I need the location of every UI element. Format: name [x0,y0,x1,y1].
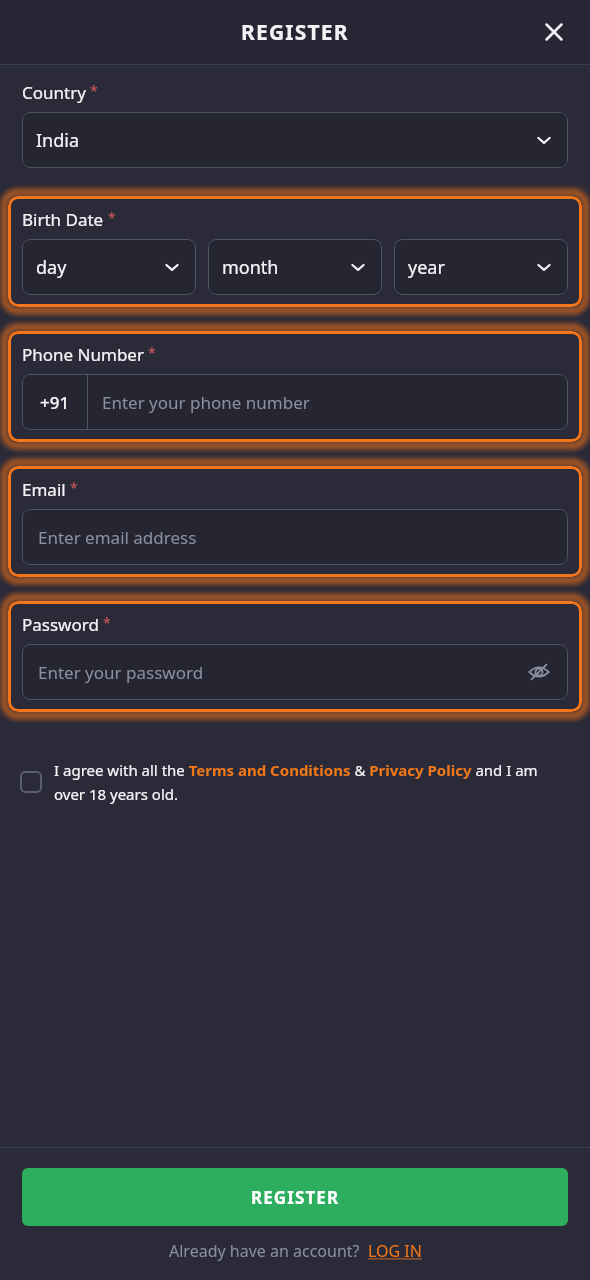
staticText: * [90,81,98,100]
button[interactable]: year [394,239,568,295]
button[interactable]: day [22,239,196,295]
button[interactable]: I agree with all the Terms and Condition… [20,760,570,804]
button[interactable]: Show password [522,655,556,689]
staticText: Birth Date [22,208,104,231]
staticText: I agree with all the Terms and Condition… [54,760,570,804]
staticText: * [108,208,116,227]
button[interactable]: Close [532,10,576,54]
staticText: * [70,478,78,497]
staticText: Password [22,613,99,636]
staticText: Email [22,478,66,501]
staticText: * [148,343,156,362]
staticText: day [36,255,162,280]
button[interactable]: +91 [22,374,568,430]
button[interactable]: LOG IN [368,1240,422,1262]
staticText: Phone Number [22,343,144,366]
staticText: Enter your phone number [102,391,310,414]
staticText: Enter email address [38,526,197,549]
button[interactable]: Enter email address [22,509,568,565]
staticText: REGISTER [251,1186,340,1209]
staticText: India [36,128,534,153]
button[interactable]: India [22,112,568,168]
button[interactable]: month [208,239,382,295]
button[interactable]: REGISTER [22,1168,568,1226]
staticText: month [222,255,348,280]
staticText: * [103,613,111,632]
staticText: year [408,255,534,280]
staticText: REGISTER [241,18,349,47]
staticText: +91 [40,391,70,414]
button[interactable]: Enter your password [22,644,568,700]
staticText: LOG IN [368,1240,422,1262]
staticText: Enter your password [38,661,204,684]
staticText: Country [22,81,86,104]
staticText: Already have an account? [169,1240,360,1262]
